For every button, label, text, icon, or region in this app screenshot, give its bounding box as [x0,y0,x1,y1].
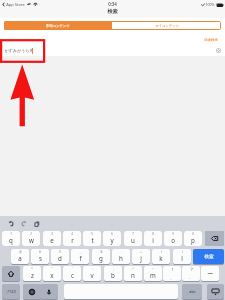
staticText: s [39,254,42,262]
staticText: 0 [192,232,194,236]
button[interactable]: 0 [184,231,202,246]
button[interactable]: 検索 [193,249,224,264]
staticText: 3 [51,232,53,236]
staticText: ！ [170,267,175,273]
staticText: ¥ [59,250,61,254]
button[interactable]: ¥ [51,249,69,264]
button[interactable]: ) [173,249,191,264]
staticText: n [131,271,135,279]
button[interactable]: Redo [19,219,28,228]
staticText: z [31,271,34,279]
staticText: + [140,250,142,254]
button[interactable]: & [92,249,110,264]
staticText: / [132,267,134,271]
staticText: 7 [132,232,134,236]
staticText: ' [72,267,73,271]
button[interactable]: * [23,266,41,281]
button[interactable]: : [83,266,101,281]
button[interactable]: ？ [182,266,200,281]
staticText: * [31,267,33,271]
staticText: 5 [91,232,93,236]
staticText: ) [182,250,183,254]
staticText: " [51,267,53,271]
button[interactable]: Shift [2,266,20,281]
staticText: 8 [152,232,154,236]
staticText: i [152,236,154,244]
staticText: h [119,254,123,262]
staticText: .?123 [6,289,16,294]
button[interactable]: ~ [144,266,162,281]
staticText: @ [19,250,22,254]
button[interactable]: 詳細検索 [200,35,221,44]
button[interactable]: / [124,266,142,281]
staticText: _ [79,250,81,254]
button[interactable]: Paste [32,219,41,228]
staticText: c [71,271,74,279]
button[interactable]: _ [71,249,89,264]
button[interactable]: - [112,249,130,264]
staticText: v [90,271,94,279]
button[interactable]: ' [63,266,81,281]
button[interactable]: Hide keyboard [207,284,224,299]
staticText: y [110,236,114,244]
staticText: App Store [6,2,25,7]
button[interactable]: ; [104,266,122,281]
staticText: ？ [189,267,194,273]
staticText: g [99,254,103,262]
button[interactable]: 6 [103,231,121,246]
staticText: b [111,271,115,279]
button[interactable]: 8 [144,231,162,246]
button[interactable]: 2 [22,231,40,246]
button[interactable]: 4 [63,231,81,246]
button[interactable]: .?123 [2,284,20,299]
button[interactable]: ー [201,266,219,281]
staticText: o [171,236,175,244]
staticText: l [181,254,183,262]
staticText: 、 [170,275,174,280]
staticText: d [58,254,62,262]
button[interactable]: Backspace [205,231,224,246]
staticText: r [71,236,74,244]
staticText: マイコンテンツ [155,24,179,28]
button[interactable]: @ [11,249,29,264]
staticText: - [121,250,122,254]
button[interactable]: マイコンテンツ [112,21,221,30]
staticText: 2 [30,232,32,236]
staticText: ( [161,250,162,254]
staticText: a [18,254,22,262]
button[interactable]: + [132,249,150,264]
staticText: ~ [152,267,154,271]
button[interactable]: 9 [164,231,182,246]
staticText: e [50,236,54,244]
button[interactable]: Dictate [40,284,58,299]
staticText: ; [113,267,114,271]
button[interactable]: 1 [2,231,20,246]
button[interactable]: 配信コンテンツ [4,21,112,30]
staticText: 詳細検索 [204,38,218,42]
button[interactable]: Change keyboard [23,284,41,299]
button[interactable]: 5 [83,231,101,246]
staticText: 9 [172,232,174,236]
staticText: # [39,250,41,254]
staticText: j [140,254,142,262]
staticText: 100% [205,2,215,7]
staticText: 6 [111,232,113,236]
button[interactable]: Undo [6,219,15,228]
button[interactable]: 7 [124,231,142,246]
button[interactable]: 3 [43,231,61,246]
button[interactable]: abc [182,284,202,299]
button[interactable]: ！ [163,266,181,281]
staticText: abc [189,289,196,294]
staticText: t [91,236,94,244]
staticText: m [150,271,156,279]
staticText: 検索 [204,254,214,260]
button[interactable]: かすみがうら市 [0,45,225,56]
button[interactable]: # [31,249,49,264]
button[interactable]: " [43,266,61,281]
button[interactable]: Clear text [216,48,221,53]
staticText: かすみがうら市 [4,48,34,53]
staticText: 1 [10,232,12,236]
staticText: p [191,236,195,244]
button[interactable]: ( [152,249,170,264]
